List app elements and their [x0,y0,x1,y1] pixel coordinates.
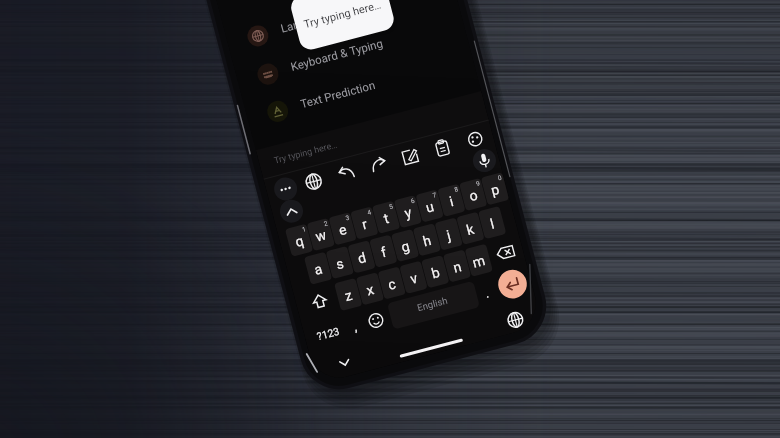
button[interactable] [0,0,780,438]
